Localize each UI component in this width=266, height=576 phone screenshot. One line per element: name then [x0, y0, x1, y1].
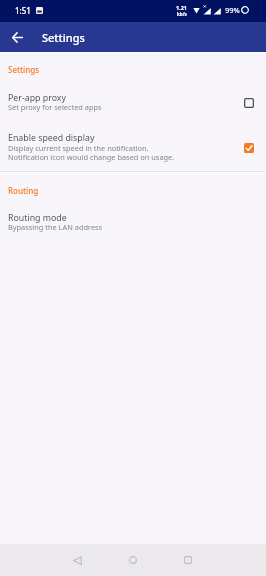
staticText: 1:51	[15, 5, 31, 16]
button[interactable]: Enable speed display	[0, 122, 266, 160]
staticText: Per-app proxy	[8, 92, 66, 104]
staticText: kb/s	[177, 11, 187, 17]
button[interactable]: Per-app proxy	[0, 85, 266, 113]
staticText: Routing	[8, 185, 39, 196]
button[interactable]: Back	[63, 546, 91, 574]
staticText: Routing mode	[8, 212, 67, 224]
button[interactable]: Home	[119, 546, 147, 574]
staticText: Settings	[8, 64, 40, 75]
staticText: 99%	[225, 5, 240, 15]
button[interactable]: Navigate up	[0, 22, 34, 52]
button[interactable]: Routing mode	[0, 205, 266, 234]
staticText: 1.21	[176, 4, 187, 11]
button[interactable]: Enabled checkbox	[240, 139, 257, 156]
button[interactable]: Recent apps	[174, 546, 202, 574]
staticText: Bypassing the LAN address	[8, 222, 103, 232]
staticText: Settings	[42, 30, 85, 45]
button[interactable]: Disabled checkbox	[240, 94, 257, 111]
staticText: Notification icon would change based on …	[8, 152, 175, 162]
staticText: Enable speed display	[8, 132, 95, 144]
staticText: Set proxy for selected apps	[8, 102, 102, 112]
staticText: Display current speed in the notificatio…	[8, 143, 149, 153]
